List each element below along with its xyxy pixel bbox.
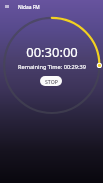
staticText: STOP — [45, 78, 58, 85]
staticText: Remaining Time: 00:29:39 — [18, 63, 86, 71]
button[interactable]: Open navigation menu — [0, 0, 13, 14]
button[interactable]: STOP — [40, 76, 62, 86]
staticText: Nidaa FM — [18, 4, 40, 11]
staticText: 00:30:00 — [26, 43, 78, 61]
